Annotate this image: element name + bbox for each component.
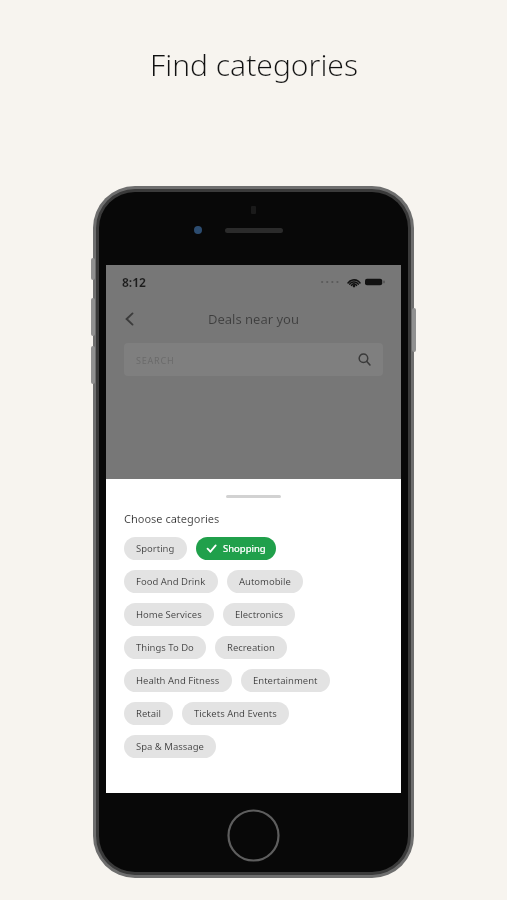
staticText: SEARCH: [136, 354, 175, 366]
button[interactable]: Spa & Massage: [124, 735, 216, 758]
staticText: Automobile: [239, 575, 291, 588]
button[interactable]: Entertainment: [241, 669, 330, 692]
staticText: Food And Drink: [136, 575, 206, 588]
staticText: 8:12: [122, 274, 146, 290]
button[interactable]: Sporting: [124, 537, 187, 560]
button[interactable]: Things To Do: [124, 636, 206, 659]
staticText: Home Services: [136, 608, 202, 621]
button[interactable]: Retail: [124, 702, 173, 725]
staticText: Recreation: [227, 641, 275, 654]
button[interactable]: Tickets And Events: [182, 702, 289, 725]
button[interactable]: Home: [227, 809, 280, 862]
staticText: Electronics: [235, 608, 283, 621]
button[interactable]: Automobile: [227, 570, 303, 593]
staticText: Health And Fitness: [136, 674, 220, 687]
button[interactable]: Recreation: [215, 636, 287, 659]
staticText: Deals near you: [208, 310, 300, 328]
staticText: Sporting: [136, 542, 175, 555]
staticText: Things To Do: [136, 641, 194, 654]
button[interactable]: Electronics: [223, 603, 295, 626]
staticText: Choose categories: [124, 511, 220, 526]
staticText: Retail: [136, 707, 161, 720]
button[interactable]: Shopping: [196, 537, 276, 560]
button[interactable]: Food And Drink: [124, 570, 218, 593]
staticText: Tickets And Events: [194, 707, 277, 720]
button[interactable]: SEARCH: [124, 343, 383, 376]
staticText: Spa & Massage: [136, 740, 204, 753]
staticText: Shopping: [223, 542, 266, 555]
staticText: Find categories: [150, 44, 358, 85]
button[interactable]: Home Services: [124, 603, 214, 626]
staticText: Entertainment: [253, 674, 318, 687]
button[interactable]: Health And Fitness: [124, 669, 232, 692]
button[interactable]: Back: [114, 303, 146, 335]
